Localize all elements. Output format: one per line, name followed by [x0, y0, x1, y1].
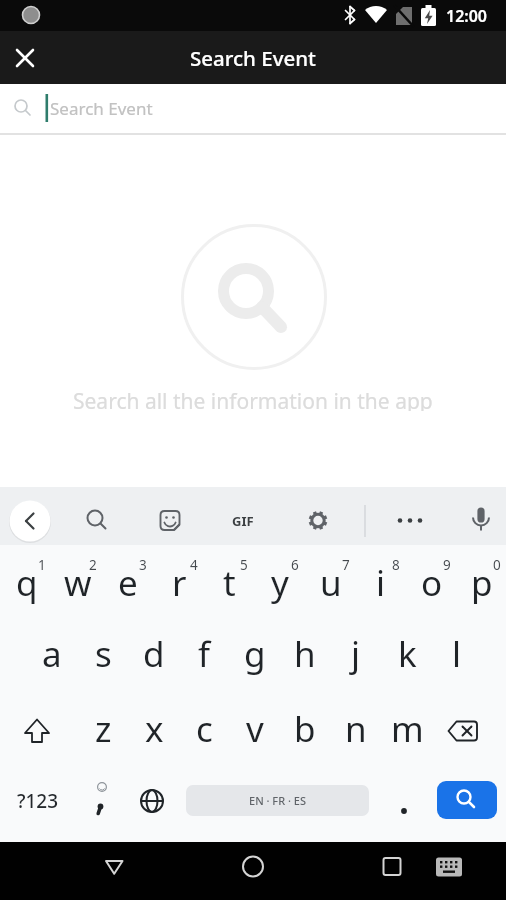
- staticText: r: [172, 559, 187, 607]
- staticText: f: [198, 630, 211, 678]
- staticText: 9: [443, 556, 451, 574]
- staticText: 8: [392, 556, 400, 574]
- staticText: o: [421, 559, 443, 607]
- staticText: GIF: [232, 512, 254, 530]
- staticText: t: [223, 559, 236, 607]
- staticText: 1: [38, 556, 46, 574]
- staticText: 3: [139, 556, 147, 574]
- staticText: 4: [190, 556, 198, 574]
- staticText: z: [95, 705, 112, 753]
- staticText: 12:00: [446, 5, 488, 25]
- staticText: u: [320, 559, 342, 607]
- staticText: ?123: [17, 788, 59, 814]
- staticText: x: [145, 705, 164, 753]
- staticText: w: [64, 559, 92, 607]
- staticText: m: [391, 705, 424, 753]
- staticText: d: [143, 630, 165, 678]
- staticText: y: [271, 559, 289, 607]
- staticText: 6: [291, 556, 299, 574]
- staticText: b: [294, 705, 316, 753]
- staticText: s: [95, 630, 112, 678]
- staticText: Search all the information in the app: [73, 387, 433, 411]
- staticText: h: [294, 630, 316, 678]
- staticText: Search Event: [50, 97, 153, 120]
- staticText: c: [196, 705, 213, 753]
- staticText: 5: [240, 556, 248, 574]
- staticText: p: [471, 559, 493, 607]
- staticText: i: [376, 559, 386, 607]
- staticText: 0: [493, 556, 501, 574]
- staticText: n: [345, 705, 367, 753]
- staticText: a: [42, 630, 62, 678]
- staticText: 7: [342, 556, 350, 574]
- staticText: 2: [89, 556, 97, 574]
- staticText: e: [118, 559, 138, 607]
- staticText: EN · FR · ES: [249, 793, 307, 808]
- staticText: g: [244, 630, 266, 678]
- staticText: q: [16, 559, 38, 607]
- staticText: Search Event: [190, 44, 316, 72]
- staticText: j: [351, 630, 361, 678]
- staticText: l: [452, 630, 462, 678]
- staticText: k: [398, 630, 417, 678]
- staticText: v: [246, 705, 264, 753]
